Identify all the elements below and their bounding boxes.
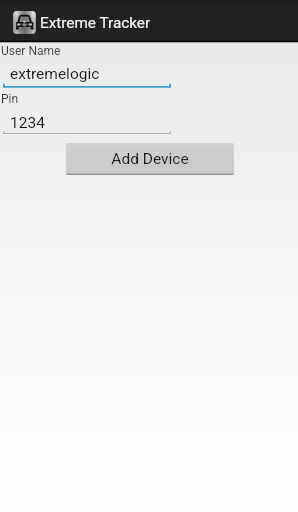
staticText: extremelogic	[10, 65, 100, 83]
button[interactable]: extremelogic	[3, 61, 171, 88]
button[interactable]: 1234	[3, 109, 171, 134]
other: App icon	[13, 11, 36, 34]
staticText: Extreme Tracker	[40, 14, 151, 32]
staticText: Add Device	[111, 150, 189, 168]
staticText: User Name	[1, 44, 61, 58]
staticText: Pin	[1, 92, 19, 106]
staticText: 1234	[10, 114, 45, 132]
button[interactable]: Add Device	[66, 143, 234, 175]
